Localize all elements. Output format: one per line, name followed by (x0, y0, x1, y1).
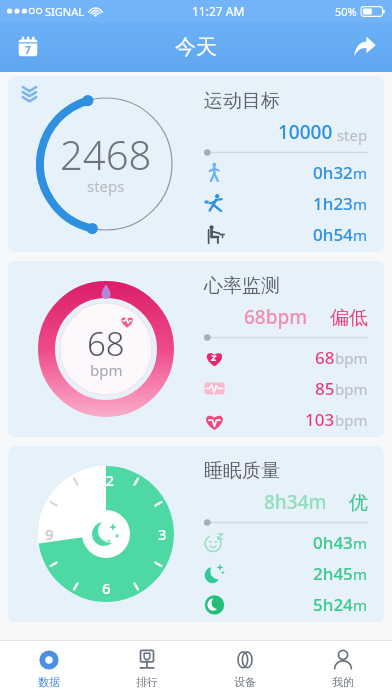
staticText: 0h43 (313, 531, 353, 554)
staticText: 103 (305, 408, 335, 431)
staticText: 3 (158, 524, 167, 544)
staticText: 排行 (136, 675, 158, 689)
staticText: 运动目标 (204, 89, 280, 113)
staticText: bpm (335, 348, 368, 368)
staticText: m (353, 595, 368, 615)
staticText: 10000 (278, 119, 333, 145)
staticText: m (353, 194, 368, 214)
staticText: 68 (87, 321, 125, 366)
staticText: bpm (335, 410, 368, 430)
button[interactable]: 2468 (8, 76, 384, 252)
staticText: bpm (90, 360, 123, 380)
button[interactable]: 数据 (0, 641, 98, 696)
staticText: 0h54 (313, 223, 353, 246)
staticText: 0h32 (313, 161, 353, 184)
staticText: 心率监测 (204, 274, 280, 298)
staticText: 7 (25, 43, 31, 57)
staticText: 优 (349, 491, 368, 515)
staticText: m (353, 225, 368, 245)
staticText: 睡眠质量 (204, 459, 280, 483)
button[interactable]: Share (344, 27, 384, 67)
staticText: 8h34m (264, 489, 327, 515)
staticText: 85 (315, 377, 335, 400)
button[interactable]: Calendar (8, 27, 48, 67)
button[interactable]: 12 (8, 446, 384, 622)
staticText: 9 (45, 524, 54, 544)
button[interactable]: 排行 (98, 641, 196, 696)
staticText: 50% (335, 4, 357, 19)
button[interactable]: 68 (8, 261, 384, 437)
staticText: m (353, 564, 368, 584)
staticText: 今天 (175, 34, 217, 60)
staticText: step (333, 125, 368, 145)
button[interactable]: 我的 (294, 641, 392, 696)
staticText: 11:27 AM (192, 3, 245, 19)
button[interactable]: 设备 (196, 641, 294, 696)
staticText: 2468 (60, 127, 152, 181)
staticText: 2h45 (313, 562, 353, 585)
staticText: 5h24 (313, 593, 353, 616)
staticText: m (353, 533, 368, 553)
staticText: 偏低 (330, 306, 368, 330)
staticText: steps (87, 176, 125, 196)
staticText: 数据 (38, 675, 60, 689)
staticText: 12 (97, 470, 115, 490)
staticText: bpm (335, 379, 368, 399)
staticText: SIGNAL (45, 4, 84, 19)
staticText: 我的 (332, 675, 354, 689)
staticText: 1h23 (313, 192, 353, 215)
staticText: m (353, 163, 368, 183)
staticText: 68 (315, 346, 335, 369)
staticText: 68bpm (244, 304, 308, 330)
staticText: 设备 (234, 675, 256, 689)
staticText: 6 (102, 578, 111, 598)
